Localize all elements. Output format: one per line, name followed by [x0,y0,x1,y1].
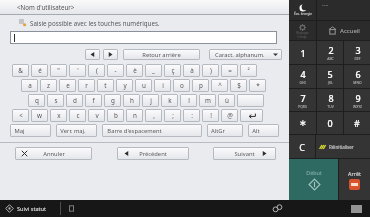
button[interactable]: , [145,109,162,122]
button[interactable]: * [249,79,266,92]
button[interactable]: < [12,109,29,122]
staticText: x [57,111,61,120]
button[interactable]: 0 [317,112,343,134]
button[interactable]: e [59,79,76,92]
button[interactable]: ' [69,64,86,77]
staticText: v [95,111,99,120]
button[interactable]: o [173,79,190,92]
button[interactable]: g [104,94,121,107]
staticText: 8 [328,92,334,104]
button[interactable] [10,31,277,44]
button[interactable] [103,49,118,60]
button[interactable]: ! [202,109,219,122]
button[interactable]: k [161,94,178,107]
button[interactable]: ù [218,94,235,107]
staticText: C [299,141,305,153]
staticText: r [85,81,88,90]
button[interactable]: 3 [344,41,370,64]
button[interactable]: ç [164,64,181,77]
button[interactable]: Réinitialiser [316,135,370,158]
button[interactable]: Suivant [213,147,276,160]
button[interactable]: _ [145,64,162,77]
button[interactable]: p [192,79,209,92]
button[interactable]: è [126,64,143,77]
button[interactable]: AltGr [207,124,243,137]
button[interactable]: ; [164,109,181,122]
button[interactable]: f [85,94,102,107]
staticText: <Nom d'utilisateur> [17,3,75,11]
button[interactable]: Barre d'espacement [102,124,202,137]
button[interactable] [240,109,263,122]
button[interactable]: 9 [344,89,370,111]
staticText: ' [77,66,79,75]
button[interactable]: " [50,64,67,77]
button[interactable]: r [78,79,95,92]
button[interactable]: ) [202,64,219,77]
button[interactable]: ( [88,64,105,77]
button[interactable]: Réglages Compt. [289,21,316,40]
button[interactable]: = [221,64,238,77]
button[interactable]: w [31,109,48,122]
button[interactable]: y [116,79,133,92]
button[interactable]: : [183,109,200,122]
button[interactable]: a [21,79,38,92]
button[interactable]: b [107,109,124,122]
button[interactable]: j [142,94,159,107]
staticText: Arrêt [348,170,361,177]
button[interactable]: Précédent [117,147,189,160]
button[interactable]: 8 [317,89,343,111]
button[interactable]: u [135,79,152,92]
button[interactable]: m [199,94,216,107]
button[interactable]: x [50,109,67,122]
button[interactable] [85,49,100,60]
button[interactable]: $ [230,79,247,92]
button[interactable]: t [97,79,114,92]
staticText: y [123,81,127,90]
button[interactable]: 5 [317,65,343,88]
button[interactable]: Arrêt [339,159,370,200]
button[interactable]: Annuler [15,147,92,160]
button[interactable]: 6 [344,65,370,88]
button[interactable]: d [66,94,83,107]
staticText: n [133,111,137,120]
button[interactable]: ² [240,64,257,77]
button[interactable]: - [107,64,124,77]
button[interactable]: c [69,109,86,122]
staticText: ! [210,111,212,120]
button[interactable]: n [126,109,143,122]
button[interactable]: Caract. alphanum. [209,49,282,60]
button[interactable]: 7 [289,89,316,111]
button[interactable]: Début [289,159,338,200]
staticText: 4 [300,68,306,80]
button[interactable]: @ [221,109,238,122]
button[interactable]: 4 [289,65,316,88]
button[interactable]: Verr. maj. [56,124,97,137]
button[interactable]: & [12,64,29,77]
staticText: , [153,111,155,120]
button[interactable]: C [289,135,315,158]
button[interactable]: Éco. énergie [289,0,316,20]
button[interactable]: i [154,79,171,92]
button[interactable] [237,94,264,107]
button[interactable]: ^ [211,79,228,92]
staticText: ç [171,66,175,75]
staticText: Réinitialiser [329,144,354,150]
button[interactable]: q [28,94,45,107]
button[interactable]: Alt [248,124,279,137]
staticText: " [57,66,60,75]
button[interactable]: à [183,64,200,77]
button[interactable]: 2 [317,41,343,64]
button[interactable]: Maj [10,124,51,137]
button[interactable]: Retour arrière [123,49,200,60]
button[interactable]: h [123,94,140,107]
button[interactable]: ∗ [289,112,316,134]
button[interactable]: é [31,64,48,77]
button[interactable]: z [40,79,57,92]
button[interactable]: l [180,94,197,107]
button[interactable]: # [344,112,370,134]
button[interactable]: 1 [289,41,316,64]
button[interactable]: v [88,109,105,122]
button[interactable]: s [47,94,64,107]
button[interactable]: Accueil [317,21,370,40]
